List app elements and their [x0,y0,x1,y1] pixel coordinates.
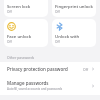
staticText: Unlock with Bluetooth [55,33,94,39]
button[interactable]: Face unlock [4,19,48,47]
staticText: Off [55,10,60,14]
staticText: Autofill, saved accounts and passwords [7,87,63,91]
staticText: Off [83,67,88,72]
button[interactable]: Privacy protection password [0,62,100,76]
button[interactable]: Screen lock [4,0,48,17]
button[interactable]: Manage passwords [0,76,100,95]
staticText: Off [7,40,12,44]
other: Open Privacy protection password [91,67,95,71]
staticText: Other passwords [7,55,35,60]
staticText: Screen lock [7,3,31,9]
staticText: Off [7,10,12,14]
staticText: Off [55,40,60,44]
button[interactable]: Unlock with Bluetooth [52,19,96,47]
button[interactable]: Fingerprint unlock [52,0,96,17]
staticText: Face unlock [7,33,32,39]
other: Open Manage passwords [91,84,95,88]
staticText: Manage passwords [7,80,49,86]
staticText: Fingerprint unlock [55,3,93,9]
staticText: Privacy protection password [7,66,68,72]
